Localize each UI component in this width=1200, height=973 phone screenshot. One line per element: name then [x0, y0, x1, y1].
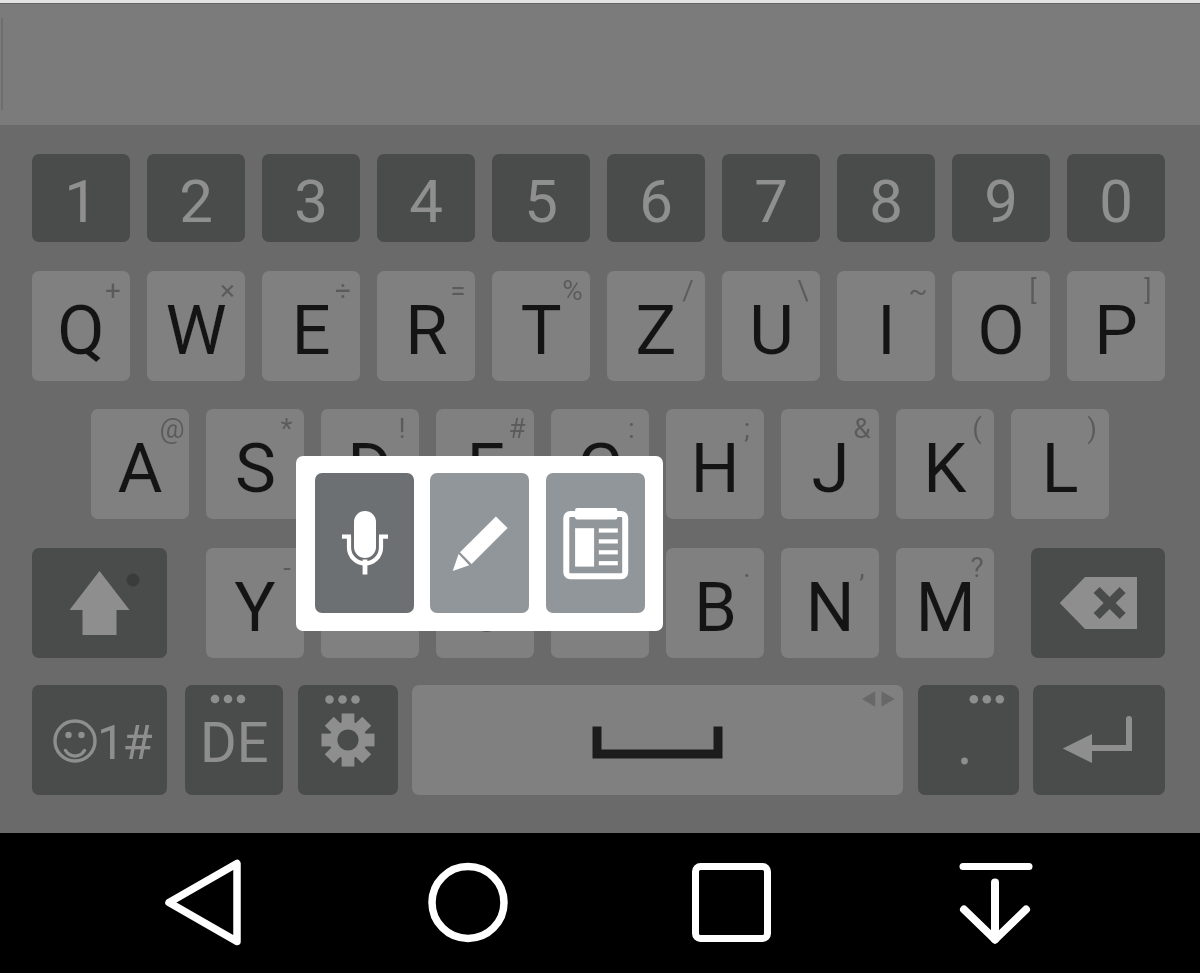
staticText: : [628, 412, 635, 445]
button[interactable]: V [551, 548, 649, 658]
staticText: O [977, 290, 1025, 371]
button[interactable]: Emoji and symbols [32, 685, 167, 795]
staticText: ? [970, 551, 984, 584]
staticText: D [347, 428, 393, 509]
staticText: × [220, 274, 235, 307]
button[interactable]: 5 [492, 154, 590, 242]
button[interactable]: K [896, 409, 994, 519]
staticText: + [105, 274, 121, 307]
staticText: DE [200, 710, 269, 776]
staticText: 7 [754, 166, 788, 236]
staticText: ” [626, 551, 637, 584]
button[interactable]: Q [32, 271, 130, 381]
staticText: ) [1087, 412, 1097, 445]
button[interactable]: 7 [722, 154, 820, 242]
staticText: ] [1144, 274, 1152, 307]
button[interactable]: D [321, 409, 419, 519]
button[interactable]: O [952, 271, 1050, 381]
staticText: N [805, 567, 855, 648]
button[interactable]: S [206, 409, 304, 519]
staticText: X [348, 567, 392, 648]
button[interactable]: Y [206, 548, 304, 658]
staticText: V [578, 567, 622, 648]
button[interactable]: I [837, 271, 935, 381]
button[interactable]: Enter [1033, 685, 1165, 795]
button[interactable]: Period [918, 685, 1019, 795]
button[interactable]: Clipboard [546, 473, 645, 613]
staticText: . [743, 551, 751, 584]
button[interactable]: L [1011, 409, 1109, 519]
staticText: W [165, 290, 227, 371]
staticText: 2 [179, 166, 213, 236]
button[interactable]: 9 [952, 154, 1050, 242]
staticText: I [877, 290, 896, 371]
button[interactable]: Settings [298, 685, 398, 795]
staticText: B [694, 567, 737, 648]
button[interactable]: T [492, 271, 590, 381]
button[interactable]: A [91, 409, 189, 519]
button[interactable]: N [781, 548, 879, 658]
button[interactable]: Handwriting [430, 473, 529, 613]
button[interactable]: 3 [262, 154, 360, 242]
staticText: S [235, 428, 276, 509]
button[interactable]: 8 [837, 154, 935, 242]
staticText: E [291, 290, 331, 371]
button[interactable]: F [436, 409, 534, 519]
button[interactable]: Language [185, 685, 283, 795]
button[interactable]: Space [412, 685, 903, 795]
staticText: 1 [64, 166, 98, 236]
staticText: K [923, 428, 967, 509]
button[interactable]: 4 [377, 154, 475, 242]
staticText: J [811, 428, 850, 509]
staticText: Q [57, 290, 105, 371]
button[interactable]: Recent apps [662, 835, 800, 973]
staticText: A [117, 428, 163, 509]
button[interactable]: B [666, 548, 764, 658]
button[interactable]: 2 [147, 154, 245, 242]
staticText: F [466, 428, 505, 509]
staticText: G [577, 428, 624, 509]
button[interactable]: P [1067, 271, 1165, 381]
staticText: L [1041, 428, 1079, 509]
button[interactable]: 0 [1067, 154, 1165, 242]
staticText: ÷ [335, 274, 351, 307]
button[interactable]: Shift [32, 548, 167, 658]
button[interactable]: C [436, 548, 534, 658]
button[interactable]: 1 [32, 154, 130, 242]
staticText: 4 [409, 166, 443, 236]
button[interactable]: Z [607, 271, 705, 381]
staticText: 5 [524, 166, 558, 236]
button[interactable]: Back [134, 835, 272, 973]
button[interactable]: 6 [607, 154, 705, 242]
staticText: 8 [869, 166, 903, 236]
staticText: # [508, 412, 526, 445]
button[interactable]: M [896, 548, 994, 658]
button[interactable]: R [377, 271, 475, 381]
staticText: 9 [984, 166, 1018, 236]
staticText: - [283, 551, 291, 584]
button[interactable]: Voice input [315, 473, 414, 613]
staticText: * [280, 412, 293, 445]
staticText: R [405, 290, 448, 371]
button[interactable]: J [781, 409, 879, 519]
staticText: 6 [639, 166, 673, 236]
button[interactable]: Home [399, 835, 537, 973]
staticText: P [1094, 290, 1138, 371]
button[interactable]: Hide keyboard [926, 835, 1064, 973]
button[interactable]: H [666, 409, 764, 519]
button[interactable]: G [551, 409, 649, 519]
staticText: [ [1029, 274, 1037, 307]
staticText: U [749, 290, 794, 371]
button[interactable]: Backspace [1031, 548, 1165, 658]
button[interactable]: X [321, 548, 419, 658]
staticText: ! [398, 412, 406, 445]
staticText: / [682, 274, 694, 307]
staticText: ~ [908, 274, 928, 307]
staticText: Z [635, 290, 677, 371]
button[interactable]: E [262, 271, 360, 381]
button[interactable]: W [147, 271, 245, 381]
button[interactable]: U [722, 271, 820, 381]
